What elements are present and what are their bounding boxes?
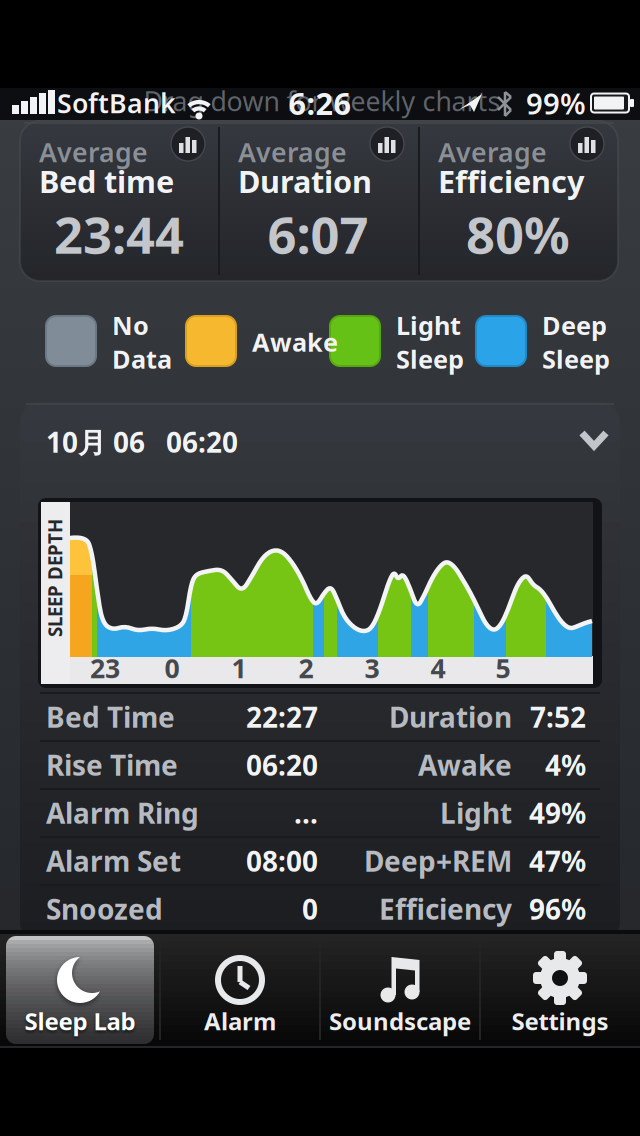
staticText: 5	[495, 650, 510, 686]
button[interactable]: Weekly chart	[367, 124, 407, 164]
staticText: Snoozed	[46, 890, 163, 928]
staticText: 23	[90, 650, 120, 686]
staticText: 2	[298, 650, 313, 686]
button[interactable]: Toggle day details	[20, 402, 620, 480]
staticText: 6:26	[288, 83, 351, 123]
staticText: Drag down for weekly charts	[143, 83, 500, 119]
staticText: Settings	[511, 1005, 608, 1037]
button[interactable]: Weekly chart	[168, 124, 208, 164]
staticText: 49%	[529, 794, 586, 832]
staticText: Awake	[252, 325, 338, 359]
staticText: Deep Sleep	[542, 308, 610, 376]
staticText: Awake	[418, 746, 512, 784]
staticText: 0	[302, 890, 318, 928]
staticText: Bed time	[39, 161, 174, 201]
staticText: Duration	[238, 161, 372, 201]
staticText: 1	[231, 650, 246, 686]
staticText: Alarm Ring	[46, 794, 199, 832]
staticText: Alarm Set	[46, 842, 181, 880]
staticText: 80%	[466, 200, 570, 268]
staticText: 7:52	[530, 698, 586, 736]
staticText: Rise Time	[46, 746, 178, 784]
staticText: 4	[430, 650, 445, 686]
button[interactable]: Soundscape	[320, 934, 480, 1046]
staticText: Sleep Lab	[24, 1005, 135, 1037]
staticText: Average	[438, 134, 547, 170]
staticText: 23:44	[54, 200, 184, 268]
staticText: 10月 06 06:20	[46, 423, 238, 461]
staticText: 47%	[529, 842, 586, 880]
button[interactable]: Alarm	[160, 934, 320, 1046]
staticText: 6:07	[267, 200, 368, 268]
staticText: SoftBank	[57, 85, 176, 121]
staticText: 3	[364, 650, 379, 686]
staticText: ...	[294, 794, 318, 832]
button[interactable]: Sleep Lab	[0, 934, 160, 1046]
button[interactable]: Weekly chart	[567, 124, 607, 164]
staticText: Average	[238, 134, 347, 170]
staticText: 06:20	[246, 746, 318, 784]
staticText: Efficiency	[379, 890, 512, 928]
staticText: Duration	[389, 698, 512, 736]
staticText: No Data	[112, 308, 172, 376]
staticText: 0	[164, 650, 179, 686]
staticText: Bed Time	[46, 698, 175, 736]
button[interactable]: Settings	[480, 934, 640, 1046]
staticText: Light Sleep	[396, 308, 464, 376]
staticText: 22:27	[246, 698, 318, 736]
staticText: 08:00	[246, 842, 318, 880]
staticText: Average	[39, 134, 148, 170]
staticText: Light	[440, 794, 512, 832]
staticText: 4%	[545, 746, 586, 784]
staticText: Efficiency	[438, 161, 585, 201]
staticText: 99%	[526, 83, 586, 122]
staticText: 96%	[529, 890, 586, 928]
staticText: SLEEP DEPTH	[0, 566, 114, 590]
staticText: Soundscape	[329, 1005, 471, 1037]
staticText: Alarm	[204, 1005, 276, 1037]
staticText: Deep+REM	[364, 842, 512, 880]
